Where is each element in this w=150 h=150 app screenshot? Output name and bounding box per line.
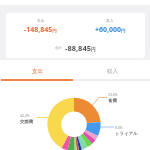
button[interactable]: 収入 (75, 60, 150, 80)
staticText: 23.6% (108, 92, 118, 97)
staticText: +60,000円 (95, 25, 126, 35)
staticText: トライアル (115, 131, 138, 137)
staticText: 収入 (106, 18, 114, 23)
button[interactable]: 支出 (0, 60, 75, 80)
staticText: -88,845円 (65, 43, 96, 53)
staticText: -148,845円 (24, 25, 57, 35)
staticText: 9.4% (115, 125, 123, 130)
staticText: 42.4% (20, 113, 30, 118)
staticText: 食費 (108, 98, 117, 104)
staticText: 支出 (37, 18, 45, 23)
staticText: 支出 (32, 68, 43, 75)
staticText: 交際費 (20, 119, 34, 125)
staticText: 収入 (107, 68, 118, 75)
staticText: 合計 (55, 46, 63, 51)
